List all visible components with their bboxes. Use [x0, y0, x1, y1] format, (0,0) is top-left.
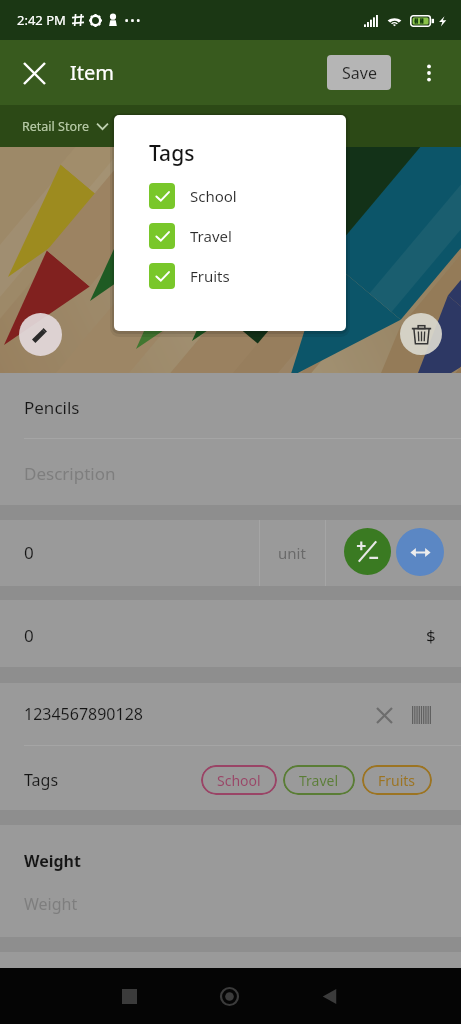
- staticText: 0: [24, 624, 34, 647]
- staticText: Retail Store: [22, 118, 89, 135]
- staticText: Fruits: [190, 266, 230, 286]
- staticText: Weight: [24, 893, 78, 915]
- button[interactable]: Adjust quantity: [344, 528, 391, 575]
- button[interactable]: Fruits: [362, 765, 432, 795]
- button[interactable]: Clear barcode: [369, 700, 399, 730]
- button[interactable]: Back: [306, 973, 352, 1019]
- staticText: Save: [342, 62, 377, 84]
- button[interactable]: Edit image: [19, 313, 62, 356]
- button[interactable]: School: [149, 183, 237, 209]
- button[interactable]: Home: [206, 973, 252, 1019]
- button[interactable]: Travel: [283, 765, 355, 795]
- staticText: 1234567890128: [24, 703, 143, 725]
- button[interactable]: Retail Store: [22, 118, 109, 135]
- button[interactable]: Close: [12, 51, 56, 95]
- staticText: School: [190, 186, 237, 206]
- staticText: $: [426, 624, 436, 647]
- button[interactable]: Save: [327, 55, 391, 90]
- staticText: Weight: [24, 850, 81, 872]
- button[interactable]: More options: [413, 57, 445, 89]
- button[interactable]: Recent apps: [106, 973, 152, 1019]
- button[interactable]: Delete image: [400, 313, 442, 355]
- button[interactable]: Transfer: [396, 528, 444, 576]
- button[interactable]: School: [201, 765, 277, 795]
- staticText: Travel: [299, 771, 339, 790]
- staticText: • • •: [125, 14, 140, 26]
- staticText: 0: [24, 541, 34, 564]
- button[interactable]: Fruits: [149, 263, 230, 289]
- staticText: Description: [24, 462, 116, 485]
- staticText: Tags: [149, 139, 195, 168]
- staticText: Pencils: [24, 396, 80, 419]
- staticText: Item: [70, 59, 114, 86]
- staticText: 2:42 PM: [17, 11, 66, 29]
- button[interactable]: Travel: [149, 223, 232, 249]
- button[interactable]: Scan barcode: [407, 700, 437, 730]
- staticText: School: [217, 771, 261, 790]
- staticText: unit: [278, 543, 306, 563]
- staticText: Travel: [190, 226, 232, 246]
- staticText: Tags: [24, 769, 59, 791]
- staticText: Fruits: [378, 771, 416, 790]
